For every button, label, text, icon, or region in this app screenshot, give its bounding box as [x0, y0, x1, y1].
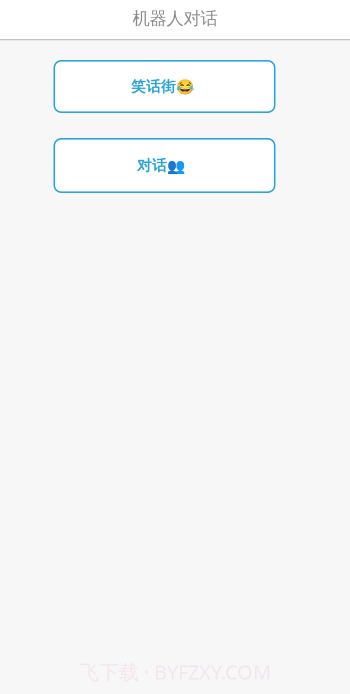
staticText: 对话👥 [137, 156, 185, 174]
staticText: 机器人对话 [132, 8, 217, 29]
button[interactable]: 笑话街😂 [53, 60, 275, 113]
button[interactable]: 对话👥 [53, 138, 275, 193]
staticText: 飞下载 · BYFZXY.COM [79, 658, 271, 685]
staticText: 笑话街😂 [131, 77, 194, 95]
